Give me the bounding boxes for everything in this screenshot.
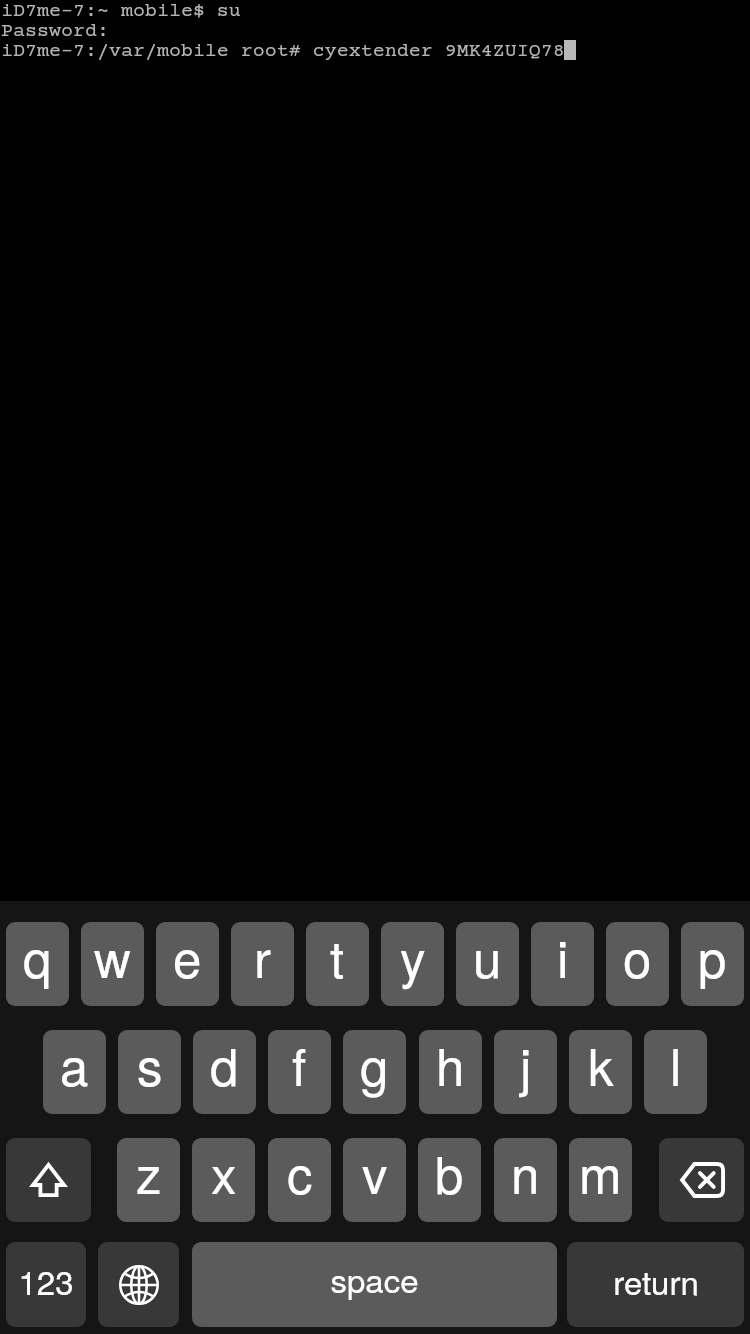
staticText: v bbox=[362, 1138, 388, 1208]
button[interactable]: f bbox=[268, 1030, 331, 1114]
staticText: r bbox=[254, 922, 271, 992]
button[interactable]: d bbox=[193, 1030, 256, 1114]
staticText: b bbox=[435, 1138, 464, 1208]
button[interactable]: space bbox=[192, 1242, 557, 1327]
staticText: h bbox=[436, 1030, 465, 1100]
button[interactable]: return bbox=[567, 1242, 744, 1327]
button[interactable]: i bbox=[531, 922, 594, 1006]
staticText: p bbox=[698, 922, 727, 992]
staticText: x bbox=[211, 1138, 237, 1208]
button[interactable]: l bbox=[644, 1030, 707, 1114]
button[interactable]: g bbox=[343, 1030, 406, 1114]
staticText: j bbox=[520, 1030, 532, 1100]
button[interactable]: k bbox=[569, 1030, 632, 1114]
button[interactable]: x bbox=[192, 1138, 255, 1222]
staticText: k bbox=[588, 1030, 614, 1100]
staticText: m bbox=[579, 1138, 622, 1208]
staticText: q bbox=[23, 922, 52, 992]
button[interactable]: s bbox=[118, 1030, 181, 1114]
button[interactable]: n bbox=[494, 1138, 557, 1222]
staticText: l bbox=[670, 1030, 682, 1100]
button[interactable]: 123 bbox=[6, 1242, 86, 1327]
button[interactable]: r bbox=[231, 922, 294, 1006]
button[interactable]: t bbox=[306, 922, 369, 1006]
button[interactable]: c bbox=[268, 1138, 331, 1222]
button[interactable]: w bbox=[81, 922, 144, 1006]
staticText: f bbox=[292, 1030, 307, 1100]
staticText: u bbox=[473, 922, 502, 992]
staticText: y bbox=[400, 922, 426, 992]
button[interactable]: j bbox=[494, 1030, 557, 1114]
staticText: i bbox=[557, 922, 569, 992]
button[interactable]: q bbox=[6, 922, 69, 1006]
staticText: w bbox=[94, 922, 131, 992]
staticText: return bbox=[613, 1257, 699, 1304]
button[interactable]: Delete bbox=[659, 1138, 744, 1222]
button[interactable]: o bbox=[606, 922, 669, 1006]
staticText: t bbox=[330, 922, 345, 992]
button[interactable]: p bbox=[681, 922, 744, 1006]
button[interactable]: v bbox=[343, 1138, 406, 1222]
staticText: 123 bbox=[18, 1257, 74, 1304]
staticText: g bbox=[360, 1030, 389, 1100]
staticText: o bbox=[623, 922, 652, 992]
staticText: e bbox=[173, 922, 202, 992]
button[interactable]: h bbox=[419, 1030, 482, 1114]
button[interactable]: m bbox=[569, 1138, 632, 1222]
button[interactable]: u bbox=[456, 922, 519, 1006]
staticText: space bbox=[330, 1255, 419, 1302]
staticText: s bbox=[137, 1030, 163, 1100]
staticText: a bbox=[60, 1030, 89, 1100]
staticText: d bbox=[210, 1030, 239, 1100]
button[interactable]: Shift bbox=[6, 1138, 91, 1222]
button[interactable]: y bbox=[381, 922, 444, 1006]
button[interactable]: z bbox=[117, 1138, 180, 1222]
button[interactable]: e bbox=[156, 922, 219, 1006]
button[interactable]: a bbox=[43, 1030, 106, 1114]
staticText: z bbox=[136, 1138, 162, 1208]
staticText: iD7me-7:~ mobile$ su Password: iD7me-7:/… bbox=[1, 0, 565, 63]
button[interactable]: Next keyboard bbox=[98, 1242, 179, 1327]
staticText: c bbox=[287, 1138, 313, 1208]
button[interactable]: b bbox=[418, 1138, 481, 1222]
staticText: n bbox=[511, 1138, 540, 1208]
